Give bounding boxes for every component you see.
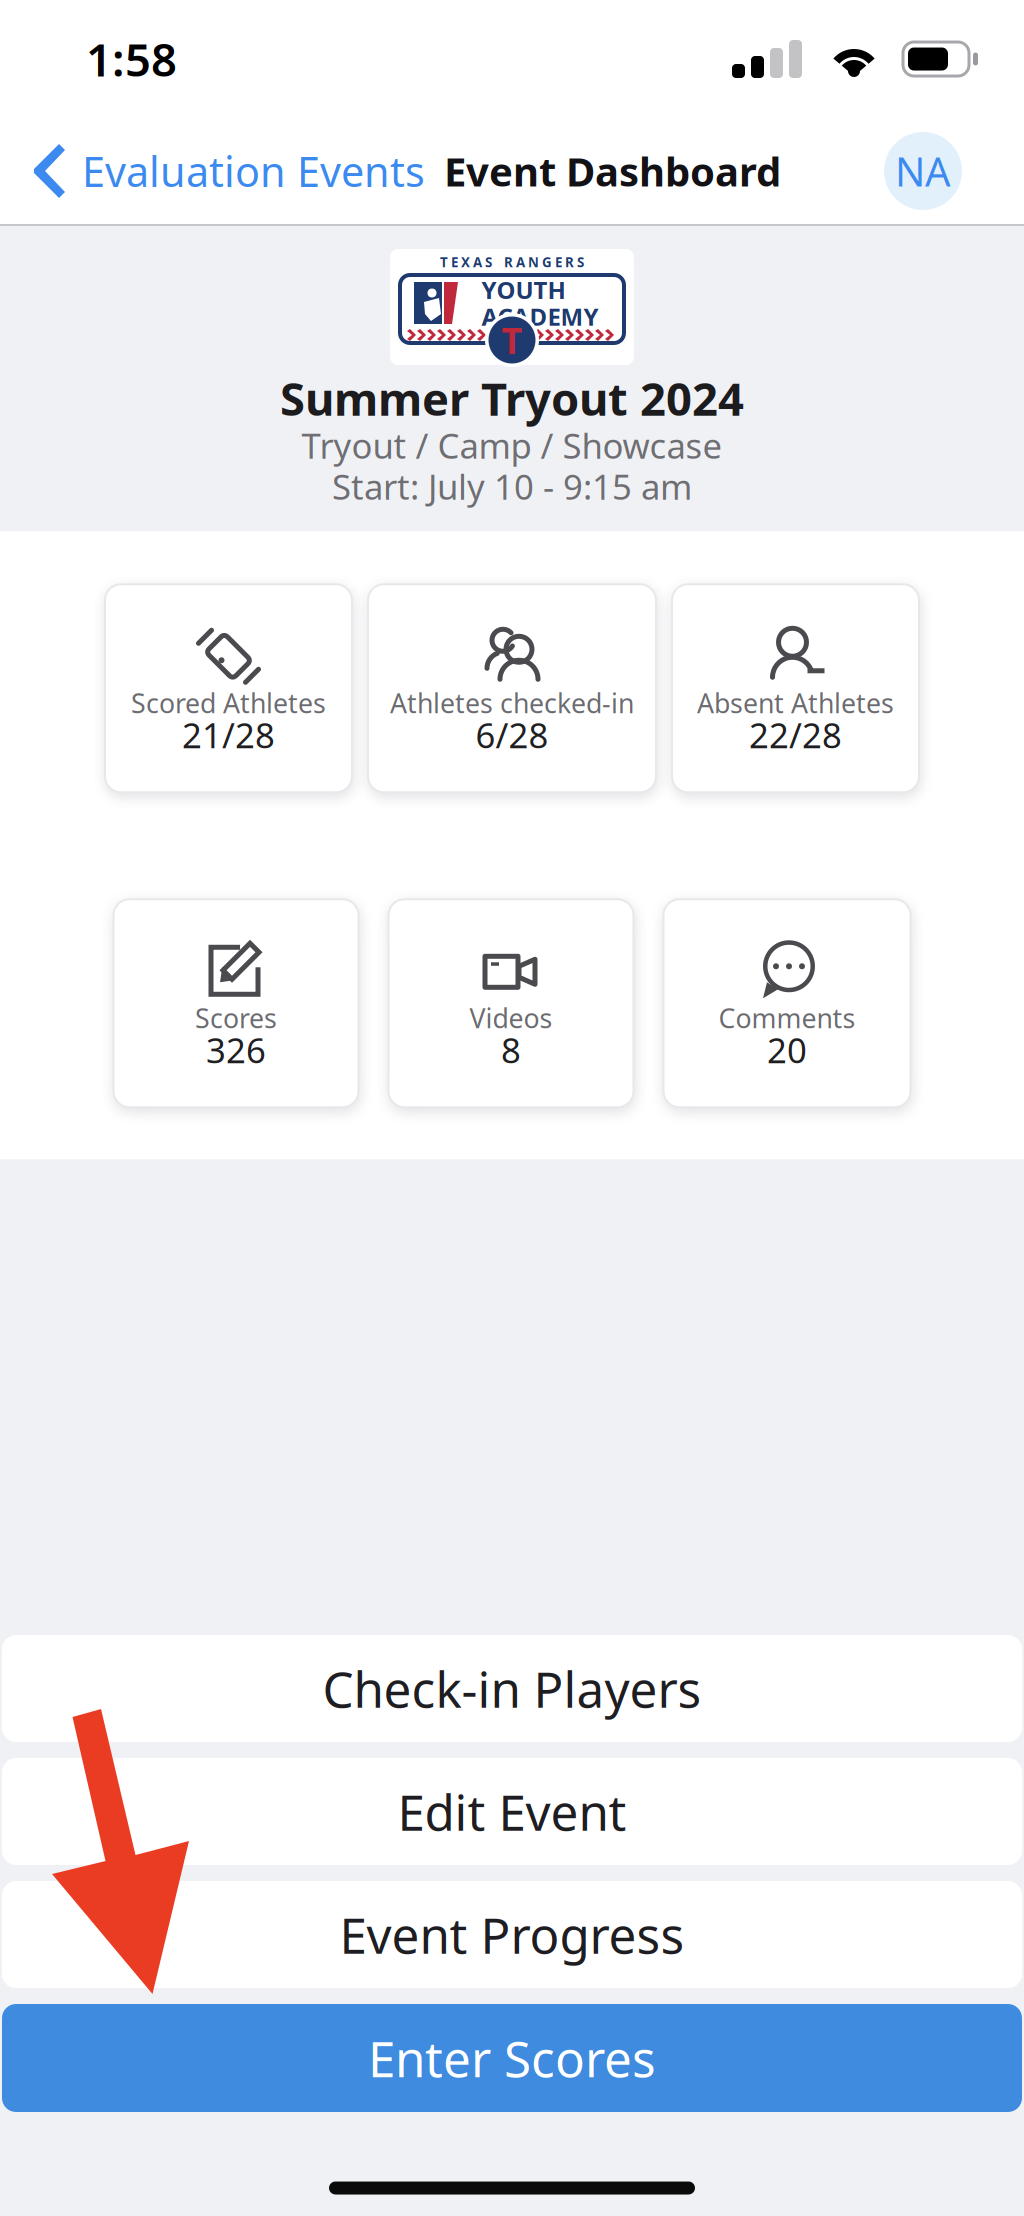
button[interactable]: Evaluation Events: [0, 118, 444, 224]
staticText: 20: [767, 1027, 807, 1073]
staticText: 6/28: [475, 712, 548, 758]
staticText: Check-in Players: [322, 1656, 701, 1721]
button[interactable]: Check-in Players: [2, 1635, 1022, 1742]
staticText: Event Progress: [339, 1902, 684, 1967]
button[interactable]: Event Dashboard: [444, 118, 781, 224]
staticText: Event Dashboard: [444, 144, 781, 197]
staticText: Evaluation Events: [82, 144, 425, 198]
button[interactable]: Videos: [388, 899, 633, 1107]
button[interactable]: Event Progress: [2, 1881, 1022, 1988]
staticText: T E X A S R A N G E R S: [440, 253, 584, 271]
staticText: Tryout / Camp / Showcase: [301, 422, 722, 468]
staticText: 1:58: [86, 29, 177, 89]
button[interactable]: Account: [870, 118, 976, 224]
staticText: YOUTH: [481, 274, 565, 305]
staticText: 326: [206, 1027, 266, 1073]
staticText: Scores: [195, 1000, 277, 1036]
staticText: Edit Event: [397, 1779, 626, 1844]
staticText: Summer Tryout 2024: [280, 368, 744, 428]
staticText: Start: July 10 - 9:15 am: [332, 463, 692, 509]
staticText: Enter Scores: [368, 2025, 656, 2091]
button[interactable]: Scored Athletes: [105, 584, 352, 792]
staticText: 8: [501, 1027, 521, 1073]
staticText: Athletes checked-in: [390, 685, 634, 721]
staticText: Comments: [718, 1000, 855, 1036]
staticText: NA: [895, 144, 951, 197]
staticText: Absent Athletes: [697, 685, 894, 721]
button[interactable]: Enter Scores: [2, 2004, 1022, 2112]
button[interactable]: Absent Athletes: [672, 584, 919, 792]
staticText: Scored Athletes: [131, 685, 326, 721]
staticText: ACADEMY: [481, 300, 598, 332]
button[interactable]: Scores: [113, 899, 358, 1107]
staticText: 21/28: [182, 712, 275, 758]
staticText: Videos: [469, 1000, 552, 1036]
button[interactable]: Edit Event: [2, 1758, 1022, 1865]
button[interactable]: Comments: [663, 899, 910, 1107]
staticText: 22/28: [749, 712, 842, 758]
staticText: T: [501, 316, 522, 364]
button[interactable]: Athletes checked-in: [368, 584, 656, 792]
